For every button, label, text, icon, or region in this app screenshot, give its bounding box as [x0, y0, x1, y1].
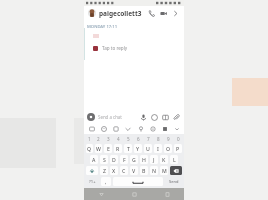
staticText: J	[153, 156, 155, 163]
staticText: C	[122, 167, 126, 174]
button[interactable]: paigecollett3	[99, 9, 147, 18]
staticText: 9	[167, 136, 170, 142]
button[interactable]: Shift	[86, 166, 98, 175]
button[interactable]: N	[150, 166, 158, 175]
button[interactable]: F	[120, 155, 128, 164]
staticText: D	[112, 156, 116, 163]
button[interactable]: 5	[123, 135, 133, 143]
button[interactable]: U	[144, 144, 152, 153]
button[interactable]: Backspace	[170, 166, 182, 175]
button[interactable]: Z	[100, 166, 108, 175]
button[interactable]: J	[150, 155, 158, 164]
staticText: Z	[103, 167, 106, 174]
button[interactable]: Next	[171, 9, 180, 18]
staticText: R	[116, 145, 120, 152]
button[interactable]: L	[170, 155, 178, 164]
button[interactable]: I	[154, 144, 162, 153]
staticText: paigecollett3	[99, 9, 142, 18]
button[interactable]: Stickers	[150, 113, 159, 122]
staticText: V	[132, 167, 136, 174]
button[interactable]: 6	[133, 135, 143, 143]
staticText: H	[142, 156, 146, 163]
staticText: Y	[136, 145, 140, 152]
button[interactable]: Clipboard	[160, 124, 169, 133]
button[interactable]: 4	[113, 135, 123, 143]
button[interactable]: 1	[85, 135, 94, 143]
button[interactable]: S	[100, 155, 108, 164]
button[interactable]: 8	[153, 135, 163, 143]
staticText: L	[173, 156, 176, 163]
staticText: 1	[88, 136, 91, 142]
button[interactable]: H	[140, 155, 148, 164]
button[interactable]: D	[110, 155, 118, 164]
staticText: Q	[87, 145, 92, 152]
staticText: G	[132, 156, 136, 163]
button[interactable]: Recents	[151, 188, 184, 200]
staticText: P	[176, 145, 180, 152]
button[interactable]: Location	[136, 124, 145, 133]
staticText: M	[162, 167, 167, 174]
button[interactable]: Space	[113, 177, 163, 186]
button[interactable]: ,	[101, 177, 111, 186]
button[interactable]: B	[140, 166, 148, 175]
staticText: U	[146, 145, 150, 152]
button[interactable]: Voice call	[147, 9, 156, 18]
button[interactable]: P	[174, 144, 182, 153]
button[interactable]: 0	[173, 135, 183, 143]
staticText: 6	[137, 136, 140, 142]
button[interactable]: X	[110, 166, 118, 175]
staticText: MONDAY 17:11	[87, 24, 118, 30]
button[interactable]: Settings	[148, 124, 157, 133]
button[interactable]: Video call	[159, 9, 168, 18]
button[interactable]: Back	[84, 188, 118, 200]
staticText: 2	[97, 136, 100, 142]
button[interactable]: K	[160, 155, 168, 164]
button[interactable]: M	[160, 166, 168, 175]
button[interactable]: C	[120, 166, 128, 175]
button[interactable]: R	[114, 144, 122, 153]
staticText: 7	[147, 136, 150, 142]
staticText: 3	[107, 136, 110, 142]
staticText: 5	[127, 136, 130, 142]
staticText: A	[92, 156, 96, 163]
button[interactable]: ?1+	[86, 177, 99, 186]
staticText: ,	[105, 178, 107, 185]
staticText: K	[162, 156, 166, 163]
button[interactable]: Emoji keyboard	[87, 124, 96, 133]
button[interactable]: W	[95, 144, 102, 153]
button[interactable]: 2	[94, 135, 103, 143]
button[interactable]: O	[164, 144, 172, 153]
button[interactable]: 7	[143, 135, 153, 143]
button[interactable]: T	[124, 144, 132, 153]
button[interactable]: Gallery	[161, 113, 170, 122]
staticText: F	[123, 156, 126, 163]
button[interactable]: A	[90, 155, 98, 164]
button[interactable]: Emoji	[99, 124, 108, 133]
button[interactable]: Attach	[172, 113, 181, 122]
button[interactable]: Y	[134, 144, 142, 153]
button[interactable]: GIF	[123, 124, 132, 133]
staticText: T	[127, 145, 130, 152]
staticText: Tap to reply	[102, 45, 128, 51]
button[interactable]: Send	[165, 177, 182, 186]
staticText: S	[103, 156, 106, 163]
button[interactable]: V	[130, 166, 138, 175]
staticText: O	[166, 145, 171, 152]
button[interactable]: Tap to reply	[87, 45, 184, 51]
staticText: B	[142, 167, 146, 174]
button[interactable]: G	[130, 155, 138, 164]
button[interactable]: Profile photo	[88, 9, 96, 17]
button[interactable]: Camera	[87, 113, 95, 121]
button[interactable]: 9	[163, 135, 173, 143]
button[interactable]: Stickers	[111, 124, 120, 133]
staticText: W	[96, 145, 101, 152]
button[interactable]: Q	[86, 144, 93, 153]
button[interactable]: Voice message	[139, 113, 148, 122]
staticText: 4	[117, 136, 120, 142]
staticText: Send	[169, 179, 179, 184]
button[interactable]: Send a chat	[98, 114, 139, 120]
button[interactable]: Collapse	[172, 124, 181, 133]
button[interactable]: E	[104, 144, 112, 153]
button[interactable]: 3	[103, 135, 113, 143]
button[interactable]: Home	[118, 188, 151, 200]
